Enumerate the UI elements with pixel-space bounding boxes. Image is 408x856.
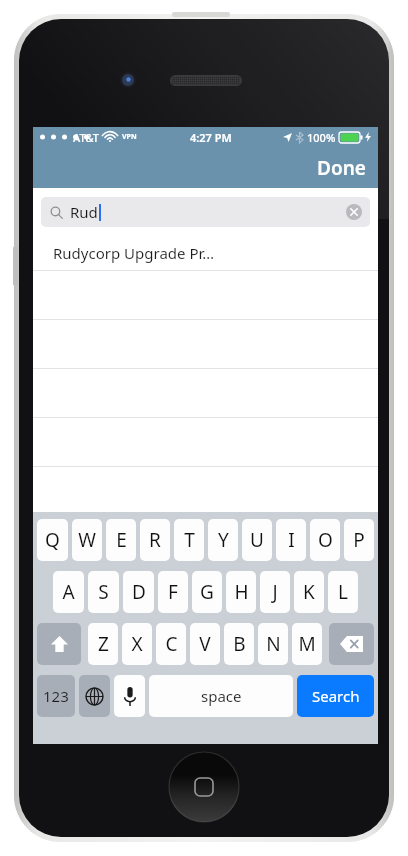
staticText: F — [168, 579, 178, 605]
staticText: Rudycorp Upgrade Pr… — [53, 243, 215, 263]
staticText: Search — [312, 686, 360, 706]
button[interactable]: O — [310, 519, 340, 561]
button[interactable]: Shift — [37, 623, 81, 665]
staticText: H — [234, 579, 249, 605]
button[interactable]: V — [190, 623, 220, 665]
button[interactable]: Done — [305, 149, 378, 187]
button[interactable]: Rudycorp Upgrade Pr… — [33, 236, 378, 270]
staticText: VPN — [122, 132, 137, 142]
staticText: X — [131, 631, 143, 657]
button[interactable]: X — [122, 623, 152, 665]
button[interactable]: R — [140, 519, 170, 561]
staticText: A — [62, 579, 75, 605]
staticText: M — [298, 631, 316, 657]
button[interactable]: M — [292, 623, 322, 665]
button[interactable]: T — [174, 519, 204, 561]
button[interactable]: D — [123, 571, 154, 613]
button[interactable]: K — [294, 571, 324, 613]
staticText: AT&T — [73, 130, 100, 145]
staticText: G — [200, 579, 214, 605]
button[interactable]: N — [258, 623, 288, 665]
staticText: 4:27 PM — [190, 130, 232, 145]
staticText: Z — [98, 631, 109, 657]
button[interactable]: E — [106, 519, 136, 561]
staticText: Done — [317, 155, 366, 181]
staticText: N — [266, 631, 281, 657]
staticText: 100% — [307, 130, 336, 145]
staticText: U — [250, 527, 264, 553]
staticText: 123 — [43, 686, 69, 706]
button[interactable]: W — [72, 519, 102, 561]
staticText: J — [272, 579, 278, 605]
button[interactable]: L — [328, 571, 358, 613]
staticText: W — [78, 527, 96, 553]
button[interactable]: Backspace — [329, 623, 374, 665]
staticText: K — [303, 579, 315, 605]
button[interactable]: J — [260, 571, 290, 613]
button[interactable]: Rud — [41, 197, 370, 227]
staticText: D — [132, 579, 146, 605]
button[interactable]: Dictation — [114, 675, 145, 717]
staticText: B — [233, 631, 246, 657]
button[interactable]: P — [344, 519, 374, 561]
staticText: V — [199, 631, 211, 657]
button[interactable]: Q — [37, 519, 68, 561]
staticText: I — [288, 527, 295, 553]
button[interactable]: A — [53, 571, 84, 613]
staticText: Rud — [70, 202, 98, 222]
staticText: T — [184, 527, 195, 553]
button[interactable]: U — [242, 519, 272, 561]
button[interactable]: Z — [88, 623, 118, 665]
button[interactable]: Change keyboard — [79, 675, 110, 717]
button[interactable]: I — [276, 519, 306, 561]
staticText: P — [353, 527, 365, 553]
button[interactable]: Search — [297, 675, 374, 717]
button[interactable]: space — [149, 675, 293, 717]
button[interactable]: 123 — [37, 675, 75, 717]
staticText: O — [318, 527, 333, 553]
button[interactable]: G — [192, 571, 222, 613]
button[interactable]: B — [224, 623, 254, 665]
staticText: C — [165, 631, 178, 657]
button[interactable]: Y — [208, 519, 238, 561]
staticText: Y — [218, 527, 229, 553]
button[interactable]: Clear text — [346, 204, 362, 220]
staticText: L — [338, 579, 348, 605]
staticText: space — [201, 686, 242, 706]
button[interactable] — [33, 467, 378, 515]
staticText: R — [149, 527, 161, 553]
staticText: E — [116, 527, 127, 553]
button[interactable]: F — [158, 571, 188, 613]
staticText: Q — [45, 527, 60, 553]
button[interactable]: S — [88, 571, 119, 613]
staticText: S — [98, 579, 109, 605]
button[interactable]: H — [226, 571, 256, 613]
button[interactable]: C — [156, 623, 186, 665]
